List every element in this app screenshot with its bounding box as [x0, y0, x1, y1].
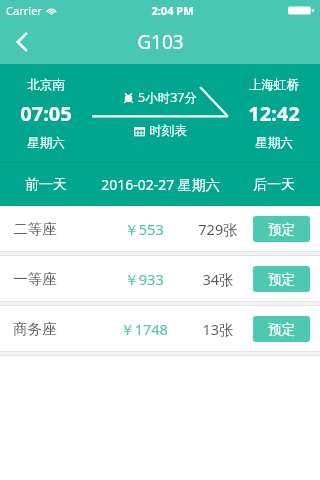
button[interactable]: 后一天	[228, 163, 320, 206]
staticText: 2016-02-27 星期六	[101, 175, 220, 194]
staticText: Carrier	[6, 3, 42, 18]
staticText: 二等座	[13, 220, 57, 238]
staticText: 星期六	[255, 135, 293, 151]
button[interactable]: 时刻表	[134, 123, 187, 139]
button[interactable]: 预定	[253, 266, 310, 292]
button[interactable]: 预定	[253, 316, 310, 342]
staticText: 商务座	[13, 320, 57, 338]
staticText: 预定	[268, 321, 295, 338]
staticText: 星期六	[27, 135, 65, 151]
staticText: 北京南	[27, 77, 65, 93]
staticText: 13张	[202, 319, 234, 339]
staticText: 时刻表	[149, 123, 187, 139]
staticText: 预定	[268, 271, 295, 288]
staticText: 一等座	[13, 270, 57, 288]
staticText: 上海虹桥	[249, 77, 299, 93]
staticText: 5小时37分	[138, 89, 197, 106]
staticText: 12:42	[248, 100, 300, 127]
staticText: ￥1748	[120, 319, 168, 339]
staticText: G103	[137, 29, 184, 55]
button[interactable]: 一等座	[0, 256, 320, 301]
staticText: 2:04 PM	[151, 3, 194, 18]
button[interactable]: Back	[0, 20, 44, 64]
staticText: 前一天	[25, 176, 67, 194]
button[interactable]: 二等座	[0, 206, 320, 251]
staticText: 729张	[198, 219, 238, 239]
staticText: 07:05	[20, 100, 72, 127]
button[interactable]: 预定	[253, 216, 310, 242]
button[interactable]: 商务座	[0, 306, 320, 351]
staticText: 预定	[268, 221, 295, 238]
staticText: 34张	[202, 269, 234, 289]
staticText: 后一天	[253, 176, 295, 194]
staticText: ￥933	[124, 269, 164, 289]
staticText: ￥553	[124, 219, 164, 239]
button[interactable]: 前一天	[0, 163, 92, 206]
